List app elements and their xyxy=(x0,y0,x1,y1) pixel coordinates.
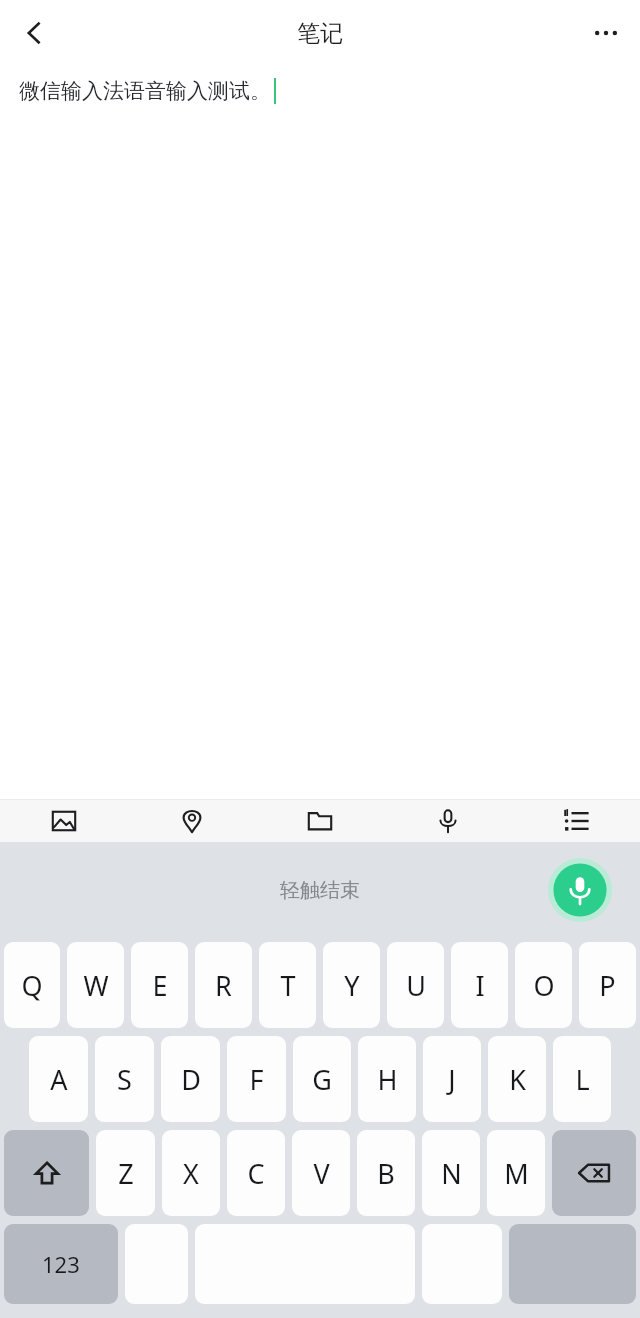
staticText: F xyxy=(249,1061,264,1098)
button[interactable]: Shift xyxy=(4,1130,89,1216)
staticText: J xyxy=(448,1061,456,1098)
button[interactable]: S xyxy=(95,1036,154,1122)
staticText: 微信输入法语音输入测试。 xyxy=(19,78,271,104)
button[interactable]: G xyxy=(293,1036,351,1122)
button[interactable]: W xyxy=(67,942,124,1028)
button[interactable]: Period xyxy=(422,1224,502,1304)
button[interactable]: Voice xyxy=(384,800,512,842)
button[interactable]: A xyxy=(29,1036,88,1122)
button[interactable]: Image xyxy=(0,800,128,842)
staticText: A xyxy=(50,1061,68,1098)
button[interactable]: X xyxy=(162,1130,220,1216)
button[interactable]: Back xyxy=(6,5,62,61)
staticText: N xyxy=(441,1155,462,1192)
staticText: B xyxy=(377,1155,395,1192)
button[interactable]: Stop voice input xyxy=(548,858,612,922)
button[interactable]: P xyxy=(579,942,636,1028)
button[interactable]: Backspace xyxy=(552,1130,636,1216)
staticText: 笔记 xyxy=(297,19,343,48)
button[interactable]: 123 xyxy=(4,1224,118,1304)
button[interactable]: B xyxy=(357,1130,415,1216)
staticText: Z xyxy=(118,1155,134,1192)
button[interactable]: F xyxy=(227,1036,286,1122)
button[interactable]: H xyxy=(358,1036,416,1122)
staticText: L xyxy=(575,1061,590,1098)
staticText: W xyxy=(83,967,109,1004)
button[interactable]: More options xyxy=(578,5,634,61)
staticText: G xyxy=(312,1061,332,1098)
button[interactable]: D xyxy=(161,1036,220,1122)
button[interactable]: Files xyxy=(256,800,384,842)
staticText: H xyxy=(377,1061,398,1098)
button[interactable]: V xyxy=(292,1130,350,1216)
button[interactable]: C xyxy=(227,1130,285,1216)
staticText: K xyxy=(509,1061,526,1098)
staticText: S xyxy=(117,1061,132,1098)
staticText: P xyxy=(599,967,616,1004)
button[interactable]: Emoji xyxy=(125,1224,188,1304)
staticText: Y xyxy=(344,967,360,1004)
button[interactable]: Q xyxy=(4,942,60,1028)
staticText: O xyxy=(533,967,555,1004)
button[interactable]: I xyxy=(451,942,508,1028)
staticText: C xyxy=(247,1155,265,1192)
button[interactable]: R xyxy=(195,942,252,1028)
button[interactable]: T xyxy=(259,942,316,1028)
staticText: E xyxy=(152,967,168,1004)
staticText: D xyxy=(181,1061,201,1098)
staticText: R xyxy=(215,967,232,1004)
staticText: V xyxy=(313,1155,330,1192)
button[interactable]: Z xyxy=(96,1130,155,1216)
button[interactable]: M xyxy=(487,1130,545,1216)
staticText: T xyxy=(280,967,296,1004)
staticText: X xyxy=(183,1155,199,1192)
button[interactable]: K xyxy=(488,1036,546,1122)
staticText: I xyxy=(475,967,485,1004)
button[interactable]: O xyxy=(515,942,572,1028)
button[interactable]: Enter xyxy=(509,1224,636,1304)
button[interactable]: Y xyxy=(323,942,380,1028)
staticText: 123 xyxy=(42,1249,80,1279)
staticText: 轻触结束 xyxy=(280,878,360,903)
button[interactable]: List xyxy=(512,800,640,842)
button[interactable]: J xyxy=(423,1036,481,1122)
button[interactable]: L xyxy=(553,1036,611,1122)
button[interactable]: U xyxy=(387,942,444,1028)
staticText: M xyxy=(504,1155,529,1192)
staticText: Q xyxy=(21,967,43,1004)
button[interactable]: Location xyxy=(128,800,256,842)
button[interactable]: N xyxy=(422,1130,480,1216)
staticText: U xyxy=(406,967,426,1004)
button[interactable]: E xyxy=(131,942,188,1028)
